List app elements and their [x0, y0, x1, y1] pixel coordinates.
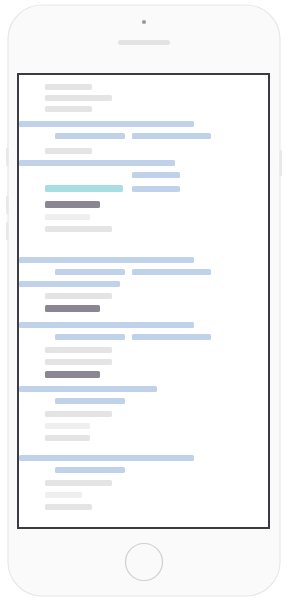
button[interactable]: Home — [125, 543, 163, 581]
button[interactable]: Loading content — [19, 75, 268, 527]
